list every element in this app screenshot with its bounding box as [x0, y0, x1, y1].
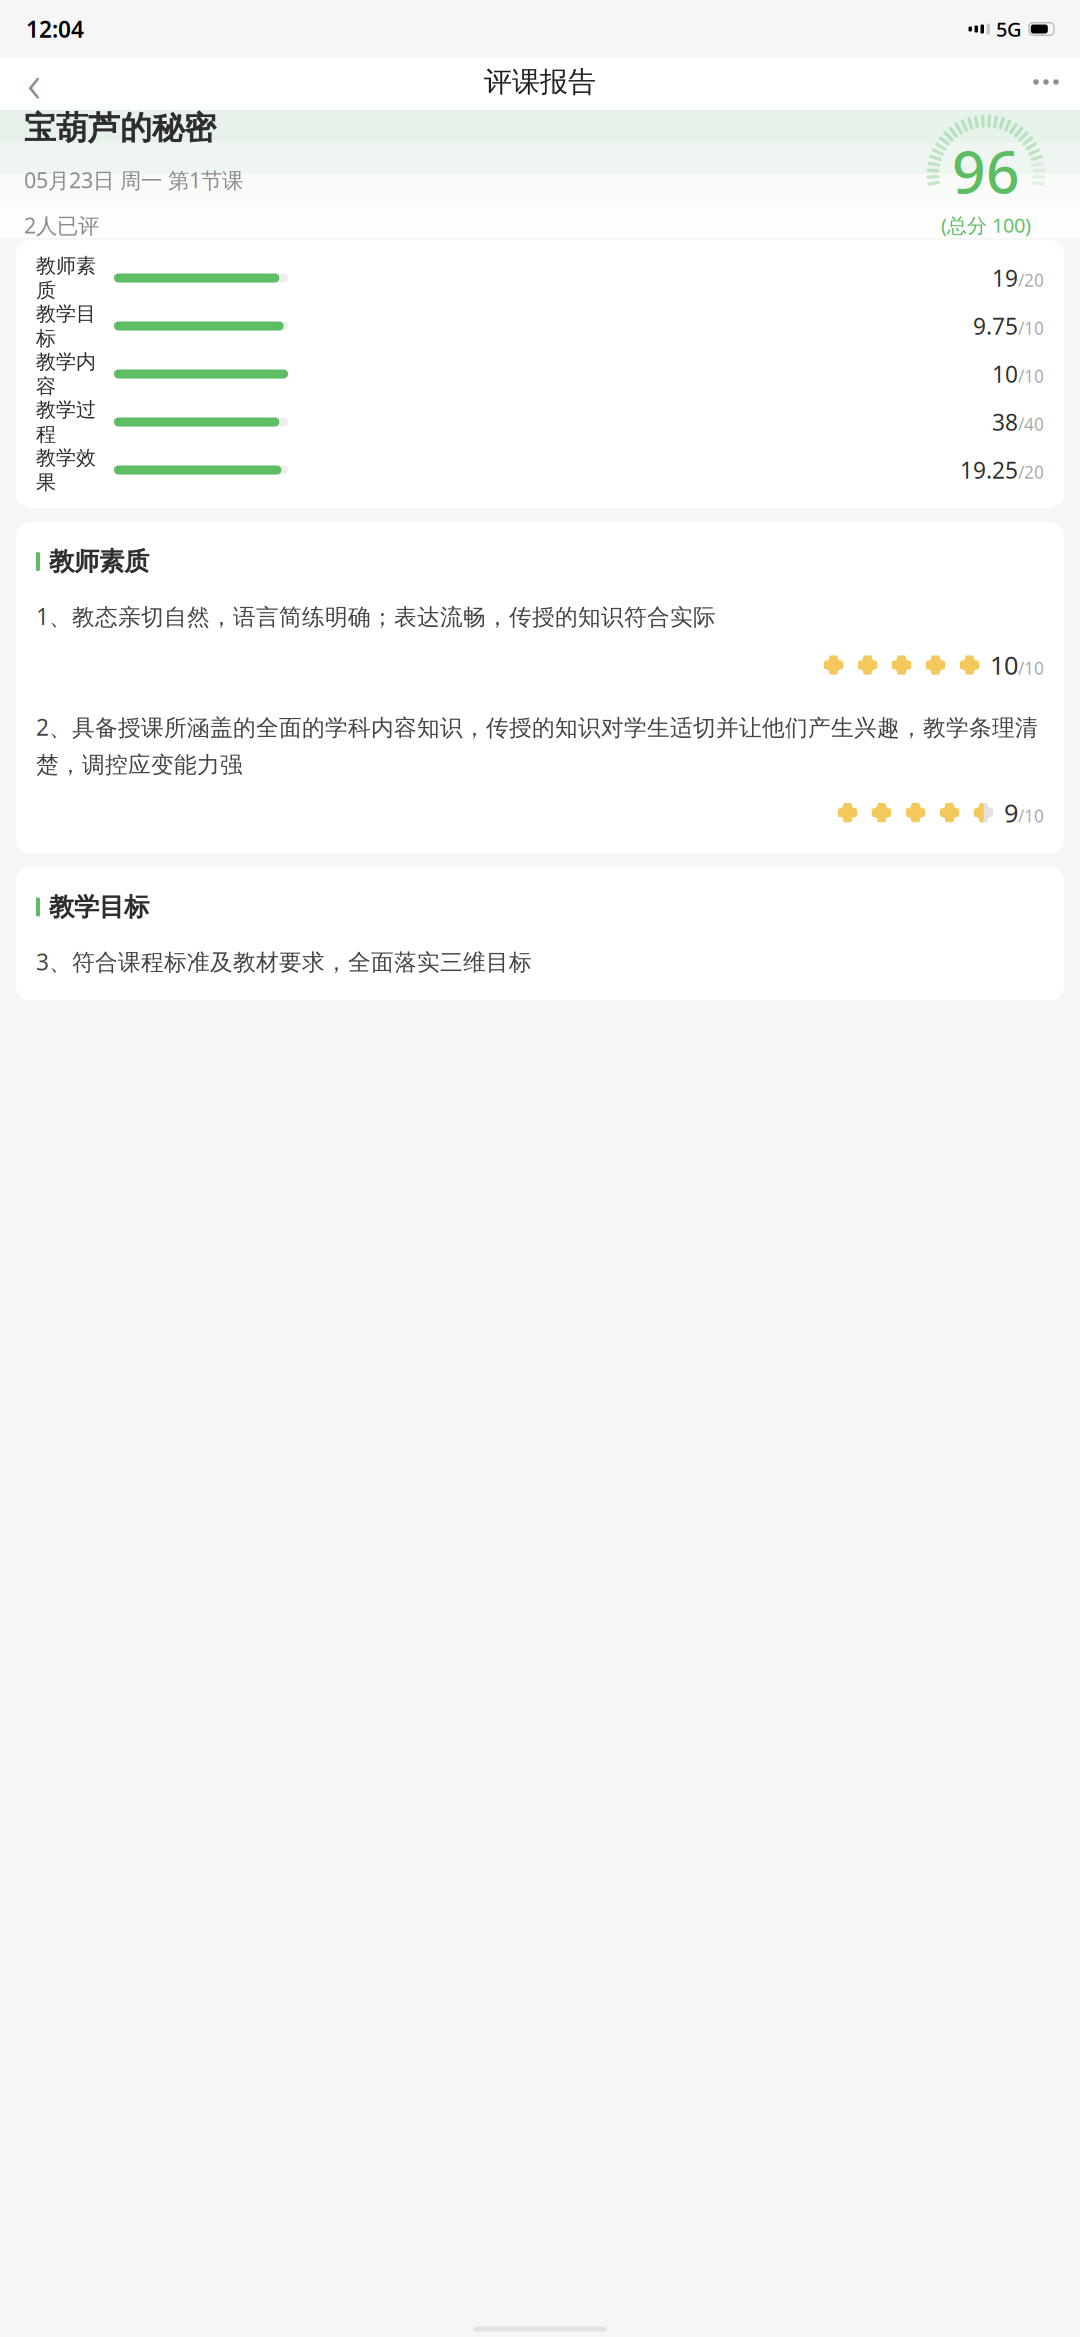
staticText: 2、具备授课所涵盖的全面的学科内容知识，传授的知识对学生适切并让他们产生兴趣，教… — [36, 712, 1038, 779]
button[interactable]: Back — [8, 58, 60, 106]
staticText: /10 — [1018, 657, 1044, 680]
staticText: 宝葫芦的秘密 — [24, 108, 216, 148]
staticText: 教师素质 — [36, 253, 96, 302]
staticText: (总分 100) — [941, 212, 1031, 238]
staticText: 9 — [1004, 796, 1018, 829]
staticText: 1、教态亲切自然，语言简练明确；表达流畅，传授的知识符合实际 — [36, 601, 716, 631]
staticText: 9.75 — [973, 311, 1018, 341]
staticText: 2人已评 — [24, 211, 99, 239]
staticText: 教学效果 — [36, 445, 96, 494]
staticText: 96 — [952, 132, 1020, 210]
staticText: ‹ — [27, 47, 41, 117]
staticText: 38 — [992, 407, 1018, 437]
staticText: 5G — [996, 16, 1022, 42]
staticText: 12:04 — [26, 14, 84, 44]
staticText: /20 — [1018, 461, 1044, 484]
staticText: 教学目标 — [49, 891, 149, 922]
staticText: 05月23日 周一 第1节课 — [24, 166, 243, 194]
staticText: 评课报告 — [484, 65, 596, 99]
staticText: 教学内容 — [36, 349, 96, 398]
staticText: 19 — [992, 263, 1018, 293]
staticText: 3、符合课程标准及教材要求，全面落实三维目标 — [36, 947, 532, 977]
staticText: /10 — [1018, 317, 1044, 340]
staticText: /10 — [1018, 804, 1044, 827]
staticText: 教学目标 — [36, 301, 96, 350]
staticText: 10 — [990, 648, 1018, 682]
staticText: 教师素质 — [49, 546, 149, 577]
staticText: 19.25 — [960, 455, 1018, 485]
staticText: 教学过程 — [36, 397, 96, 446]
staticText: /40 — [1018, 413, 1044, 436]
staticText: /20 — [1018, 269, 1044, 292]
staticText: 10 — [992, 359, 1018, 389]
staticText: /10 — [1018, 365, 1044, 388]
button[interactable]: More options — [1020, 58, 1072, 106]
